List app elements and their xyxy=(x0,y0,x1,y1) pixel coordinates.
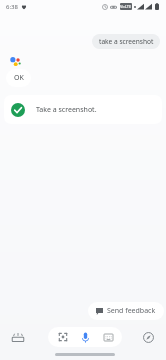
staticText: Take a screenshot. xyxy=(36,105,97,115)
staticText: VoLTE xyxy=(120,4,132,9)
staticText: Send feedback xyxy=(107,306,156,316)
button[interactable]: Take a screenshot. xyxy=(4,95,162,124)
button[interactable]: OK xyxy=(6,69,31,87)
button[interactable]: Keyboard xyxy=(100,329,116,345)
staticText: OK xyxy=(14,73,24,83)
staticText: 6:38 xyxy=(6,3,18,11)
button[interactable]: Snapshot xyxy=(10,329,26,345)
button[interactable]: take a screenshot xyxy=(92,34,160,49)
button[interactable]: Voice search xyxy=(77,329,93,345)
button[interactable]: Google Lens xyxy=(55,329,71,345)
staticText: take a screenshot xyxy=(99,37,154,46)
button[interactable]: Explore xyxy=(140,329,156,345)
button[interactable]: Send feedback xyxy=(88,302,164,320)
